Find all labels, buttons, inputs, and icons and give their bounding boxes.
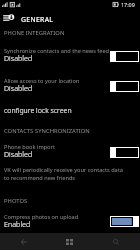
staticText: Disabled	[4, 53, 33, 63]
button[interactable]: Back	[0, 233, 46, 250]
button[interactable]: Toggle off	[110, 81, 139, 92]
button[interactable]: Home	[46, 233, 93, 250]
button[interactable]: Phone book import	[0, 143, 140, 160]
staticText: Enabled	[4, 219, 31, 229]
button[interactable]: configure lock screen	[4, 106, 72, 116]
staticText: Compress photos on upload	[4, 213, 79, 221]
staticText: PHOTOS	[4, 197, 28, 205]
button[interactable]: Toggle on	[110, 216, 139, 227]
staticText: Phone book import	[4, 143, 55, 151]
button[interactable]: Compress photos on upload	[0, 213, 140, 230]
staticText: Allow access to your location	[4, 77, 80, 85]
staticText: configure lock screen	[4, 106, 72, 116]
staticText: GENERAL	[21, 15, 54, 24]
button[interactable]: Toggle off	[110, 147, 139, 158]
staticText: 17:09	[121, 1, 135, 8]
button[interactable]: Synchronize contacts and the news feed	[0, 47, 140, 64]
button[interactable]: Toggle off	[110, 51, 139, 62]
staticText: CONTACTS SYNCHRONIZATION	[4, 127, 90, 135]
staticText: Synchronize contacts and the news feed	[4, 47, 110, 55]
staticText: Disabled	[4, 149, 33, 159]
staticText: VK will periodically receive your contac…	[4, 166, 124, 182]
button[interactable]: Search	[93, 233, 140, 250]
staticText: PHONE INTEGRATION	[4, 29, 65, 37]
button[interactable]: Allow access to your location	[0, 77, 140, 94]
staticText: Disabled	[4, 83, 33, 93]
